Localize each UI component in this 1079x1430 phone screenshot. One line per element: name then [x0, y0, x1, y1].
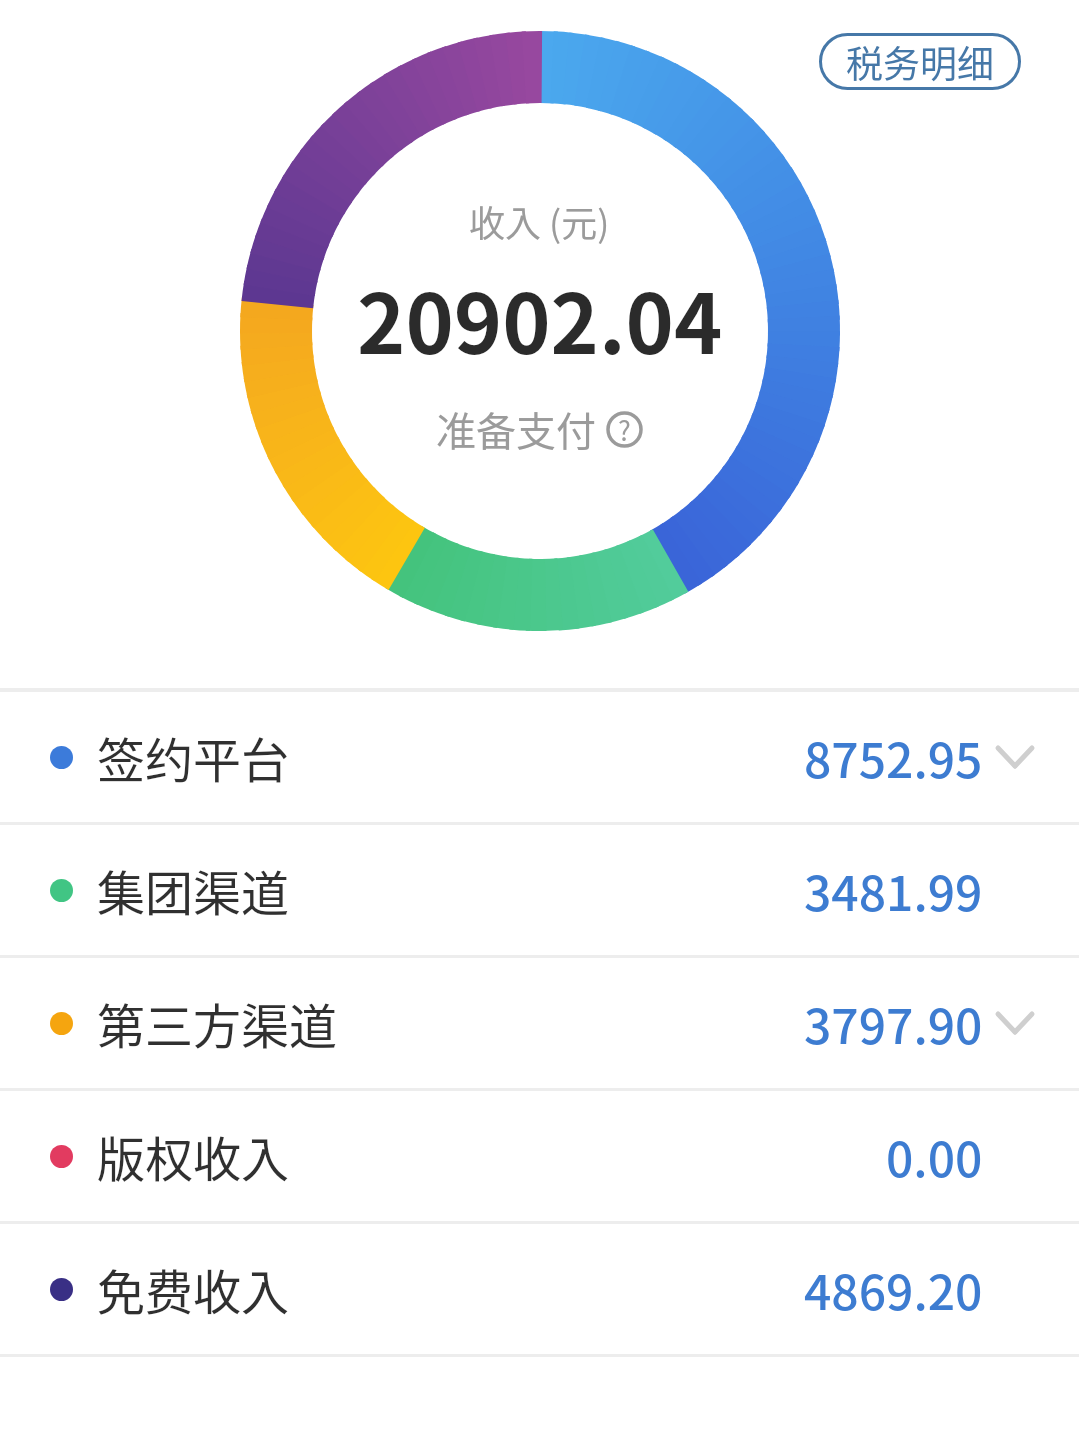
button[interactable]: 版权收入 — [0, 1091, 1079, 1221]
staticText: 0.00 — [886, 1121, 983, 1191]
staticText: 20902.04 — [357, 259, 723, 378]
button[interactable]: ? — [606, 410, 643, 449]
staticText: 4869.20 — [804, 1254, 983, 1324]
button[interactable]: 集团渠道 — [0, 825, 1079, 955]
staticText: 准备支付 — [436, 400, 596, 458]
staticText: 3481.99 — [804, 855, 983, 925]
staticText: 收入 (元) — [469, 195, 610, 247]
staticText: 签约平台 — [97, 722, 290, 792]
button[interactable]: 税务明细 — [819, 33, 1021, 90]
staticText: 集团渠道 — [97, 855, 290, 925]
button[interactable]: 签约平台 — [0, 692, 1079, 822]
staticText: 税务明细 — [846, 35, 994, 89]
button[interactable]: 第三方渠道 — [0, 958, 1079, 1088]
staticText: 3797.90 — [804, 988, 983, 1058]
staticText: 8752.95 — [804, 722, 983, 792]
staticText: 版权收入 — [97, 1121, 290, 1191]
button[interactable]: 免费收入 — [0, 1224, 1079, 1354]
staticText: 第三方渠道 — [97, 988, 338, 1058]
staticText: ? — [618, 410, 631, 449]
staticText: 免费收入 — [97, 1254, 290, 1324]
